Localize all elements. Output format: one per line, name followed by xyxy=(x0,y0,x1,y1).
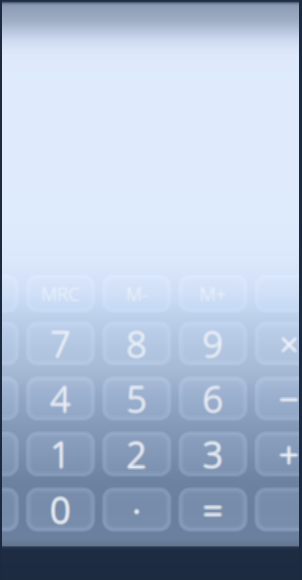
staticText: + xyxy=(279,431,300,479)
staticText: · xyxy=(131,487,140,535)
button[interactable]: Multiply xyxy=(254,321,302,366)
staticText: M+ xyxy=(198,280,225,304)
staticText: MRC xyxy=(41,283,80,308)
staticText: 6 xyxy=(202,373,223,420)
button[interactable]: Memory store xyxy=(254,274,302,313)
staticText: 5 xyxy=(125,376,146,424)
staticText: 3 xyxy=(201,430,222,478)
staticText: · xyxy=(131,484,140,532)
staticText: × xyxy=(278,323,297,367)
staticText: − xyxy=(279,375,300,422)
button[interactable]: Plus minus xyxy=(0,431,19,477)
staticText: 2 xyxy=(125,429,146,476)
staticText: M+ xyxy=(198,283,225,307)
button[interactable]: 6 xyxy=(178,376,248,421)
staticText: 1 xyxy=(50,430,71,478)
staticText: 2 xyxy=(124,430,145,478)
staticText: M- xyxy=(126,283,148,308)
staticText: × xyxy=(278,321,297,366)
staticText: MRC xyxy=(41,281,80,306)
staticText: 2 xyxy=(126,429,147,477)
staticText: M+ xyxy=(199,283,226,308)
staticText: 4 xyxy=(48,376,69,424)
staticText: 2 xyxy=(126,432,147,480)
staticText: MRC xyxy=(39,280,78,304)
staticText: · xyxy=(132,484,141,531)
staticText: 1 xyxy=(50,432,71,480)
button[interactable]: Memory recall xyxy=(25,274,95,313)
staticText: MRC xyxy=(41,280,80,305)
button[interactable]: Equals xyxy=(178,487,248,532)
staticText: 0 xyxy=(50,484,71,532)
staticText: 3 xyxy=(204,429,225,476)
button[interactable]: 1 xyxy=(25,431,95,477)
staticText: · xyxy=(132,484,141,532)
staticText: 8 xyxy=(125,320,146,367)
staticText: = xyxy=(203,486,224,533)
button[interactable]: Subtract xyxy=(254,376,302,421)
staticText: MRC xyxy=(40,281,79,306)
staticText: M- xyxy=(127,283,149,307)
staticText: + xyxy=(277,430,298,478)
staticText: 6 xyxy=(200,375,221,422)
staticText: × xyxy=(281,323,300,367)
staticText: − xyxy=(280,375,301,422)
staticText: × xyxy=(281,320,300,364)
staticText: × xyxy=(280,322,299,367)
button[interactable]: Memory add xyxy=(178,274,248,313)
button[interactable]: Add xyxy=(254,431,302,477)
button[interactable]: 5 xyxy=(102,376,172,421)
staticText: × xyxy=(280,320,299,365)
staticText: M- xyxy=(126,280,148,305)
staticText: 4 xyxy=(50,375,71,422)
staticText: = xyxy=(201,486,222,533)
button[interactable]: 2 xyxy=(102,431,172,477)
staticText: 5 xyxy=(124,375,145,422)
staticText: + xyxy=(279,430,300,478)
staticText: M- xyxy=(126,279,148,304)
staticText: 0 xyxy=(51,486,72,533)
staticText: 9 xyxy=(202,321,223,368)
staticText: 9 xyxy=(201,320,222,367)
staticText: M+ xyxy=(199,279,226,304)
staticText: 4 xyxy=(50,373,71,420)
staticText: M+ xyxy=(200,281,227,306)
button[interactable]: 4 xyxy=(25,376,95,421)
staticText: 2 xyxy=(128,429,149,476)
staticText: 2 xyxy=(125,430,146,478)
staticText: M- xyxy=(127,280,149,304)
button[interactable]: Memory clear xyxy=(0,274,19,313)
button[interactable]: 0 xyxy=(25,487,95,532)
button[interactable]: Percent xyxy=(0,376,19,421)
staticText: × xyxy=(282,321,301,366)
staticText: = xyxy=(201,487,222,535)
staticText: 7 xyxy=(51,318,72,366)
staticText: 8 xyxy=(126,318,147,365)
staticText: 3 xyxy=(201,432,222,479)
staticText: 6 xyxy=(202,377,223,424)
button[interactable]: Clear xyxy=(0,487,19,532)
staticText: 4 xyxy=(48,375,69,422)
staticText: MRC xyxy=(41,279,80,304)
staticText: 1 xyxy=(48,430,69,478)
button[interactable]: Divide xyxy=(0,321,19,366)
staticText: · xyxy=(133,486,142,533)
staticText: 1 xyxy=(51,429,72,476)
staticText: + xyxy=(280,432,301,479)
staticText: 8 xyxy=(128,318,149,366)
staticText: = xyxy=(204,487,225,535)
button[interactable]: Memory subtract xyxy=(102,274,172,313)
staticText: M- xyxy=(124,281,146,306)
button[interactable]: 9 xyxy=(178,321,248,366)
staticText: MRC xyxy=(42,283,81,307)
button[interactable]: 8 xyxy=(102,321,172,366)
button[interactable]: Decimal point xyxy=(102,487,172,532)
staticText: = xyxy=(202,488,223,535)
staticText: × xyxy=(278,320,297,364)
staticText: 4 xyxy=(52,375,73,422)
staticText: 1 xyxy=(48,432,69,479)
button[interactable]: 3 xyxy=(178,431,248,477)
staticText: 5 xyxy=(126,375,147,422)
button[interactable]: Clear all xyxy=(254,487,302,532)
button[interactable]: 7 xyxy=(25,321,95,366)
